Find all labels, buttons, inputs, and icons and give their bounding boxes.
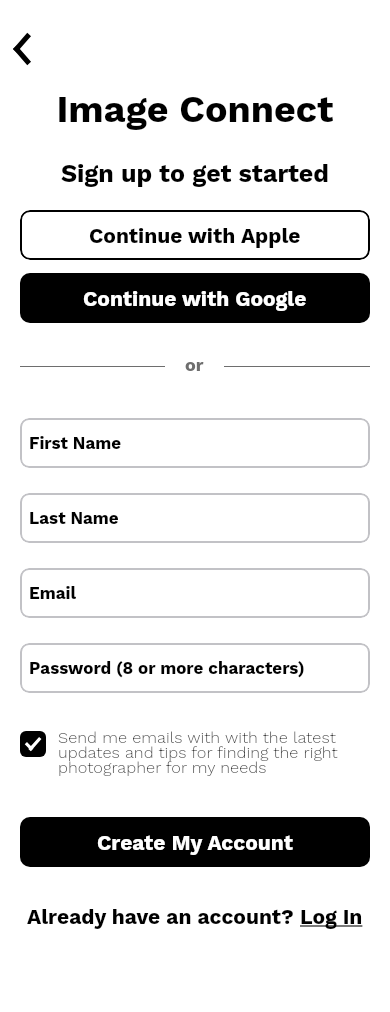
staticText: Create My Account xyxy=(97,830,293,855)
button[interactable]: Create My Account xyxy=(20,817,370,867)
button[interactable]: Password (8 or more characters) xyxy=(20,643,370,693)
button[interactable]: Continue with Google xyxy=(20,273,370,323)
staticText: Already have an account? xyxy=(27,904,300,929)
button[interactable]: First Name xyxy=(20,418,370,468)
button[interactable]: Send me emails checkbox xyxy=(20,731,46,757)
button[interactable]: Continue with Apple xyxy=(20,210,370,260)
staticText: Email xyxy=(29,583,77,603)
staticText: Log In xyxy=(300,904,363,929)
staticText: Image Connect xyxy=(0,87,390,131)
button[interactable]: Email xyxy=(20,568,370,618)
staticText: or xyxy=(185,354,204,375)
staticText: Continue with Google xyxy=(83,286,307,311)
button[interactable]: Log In xyxy=(300,904,363,929)
button[interactable]: Last Name xyxy=(20,493,370,543)
staticText: Sign up to get started xyxy=(0,159,390,188)
staticText: First Name xyxy=(29,433,122,453)
staticText: Continue with Apple xyxy=(89,223,301,248)
button[interactable]: Back xyxy=(0,27,44,71)
staticText: Send me emails with with the latest upda… xyxy=(58,728,370,777)
staticText: Password (8 or more characters) xyxy=(29,658,305,678)
staticText: Last Name xyxy=(29,508,119,528)
